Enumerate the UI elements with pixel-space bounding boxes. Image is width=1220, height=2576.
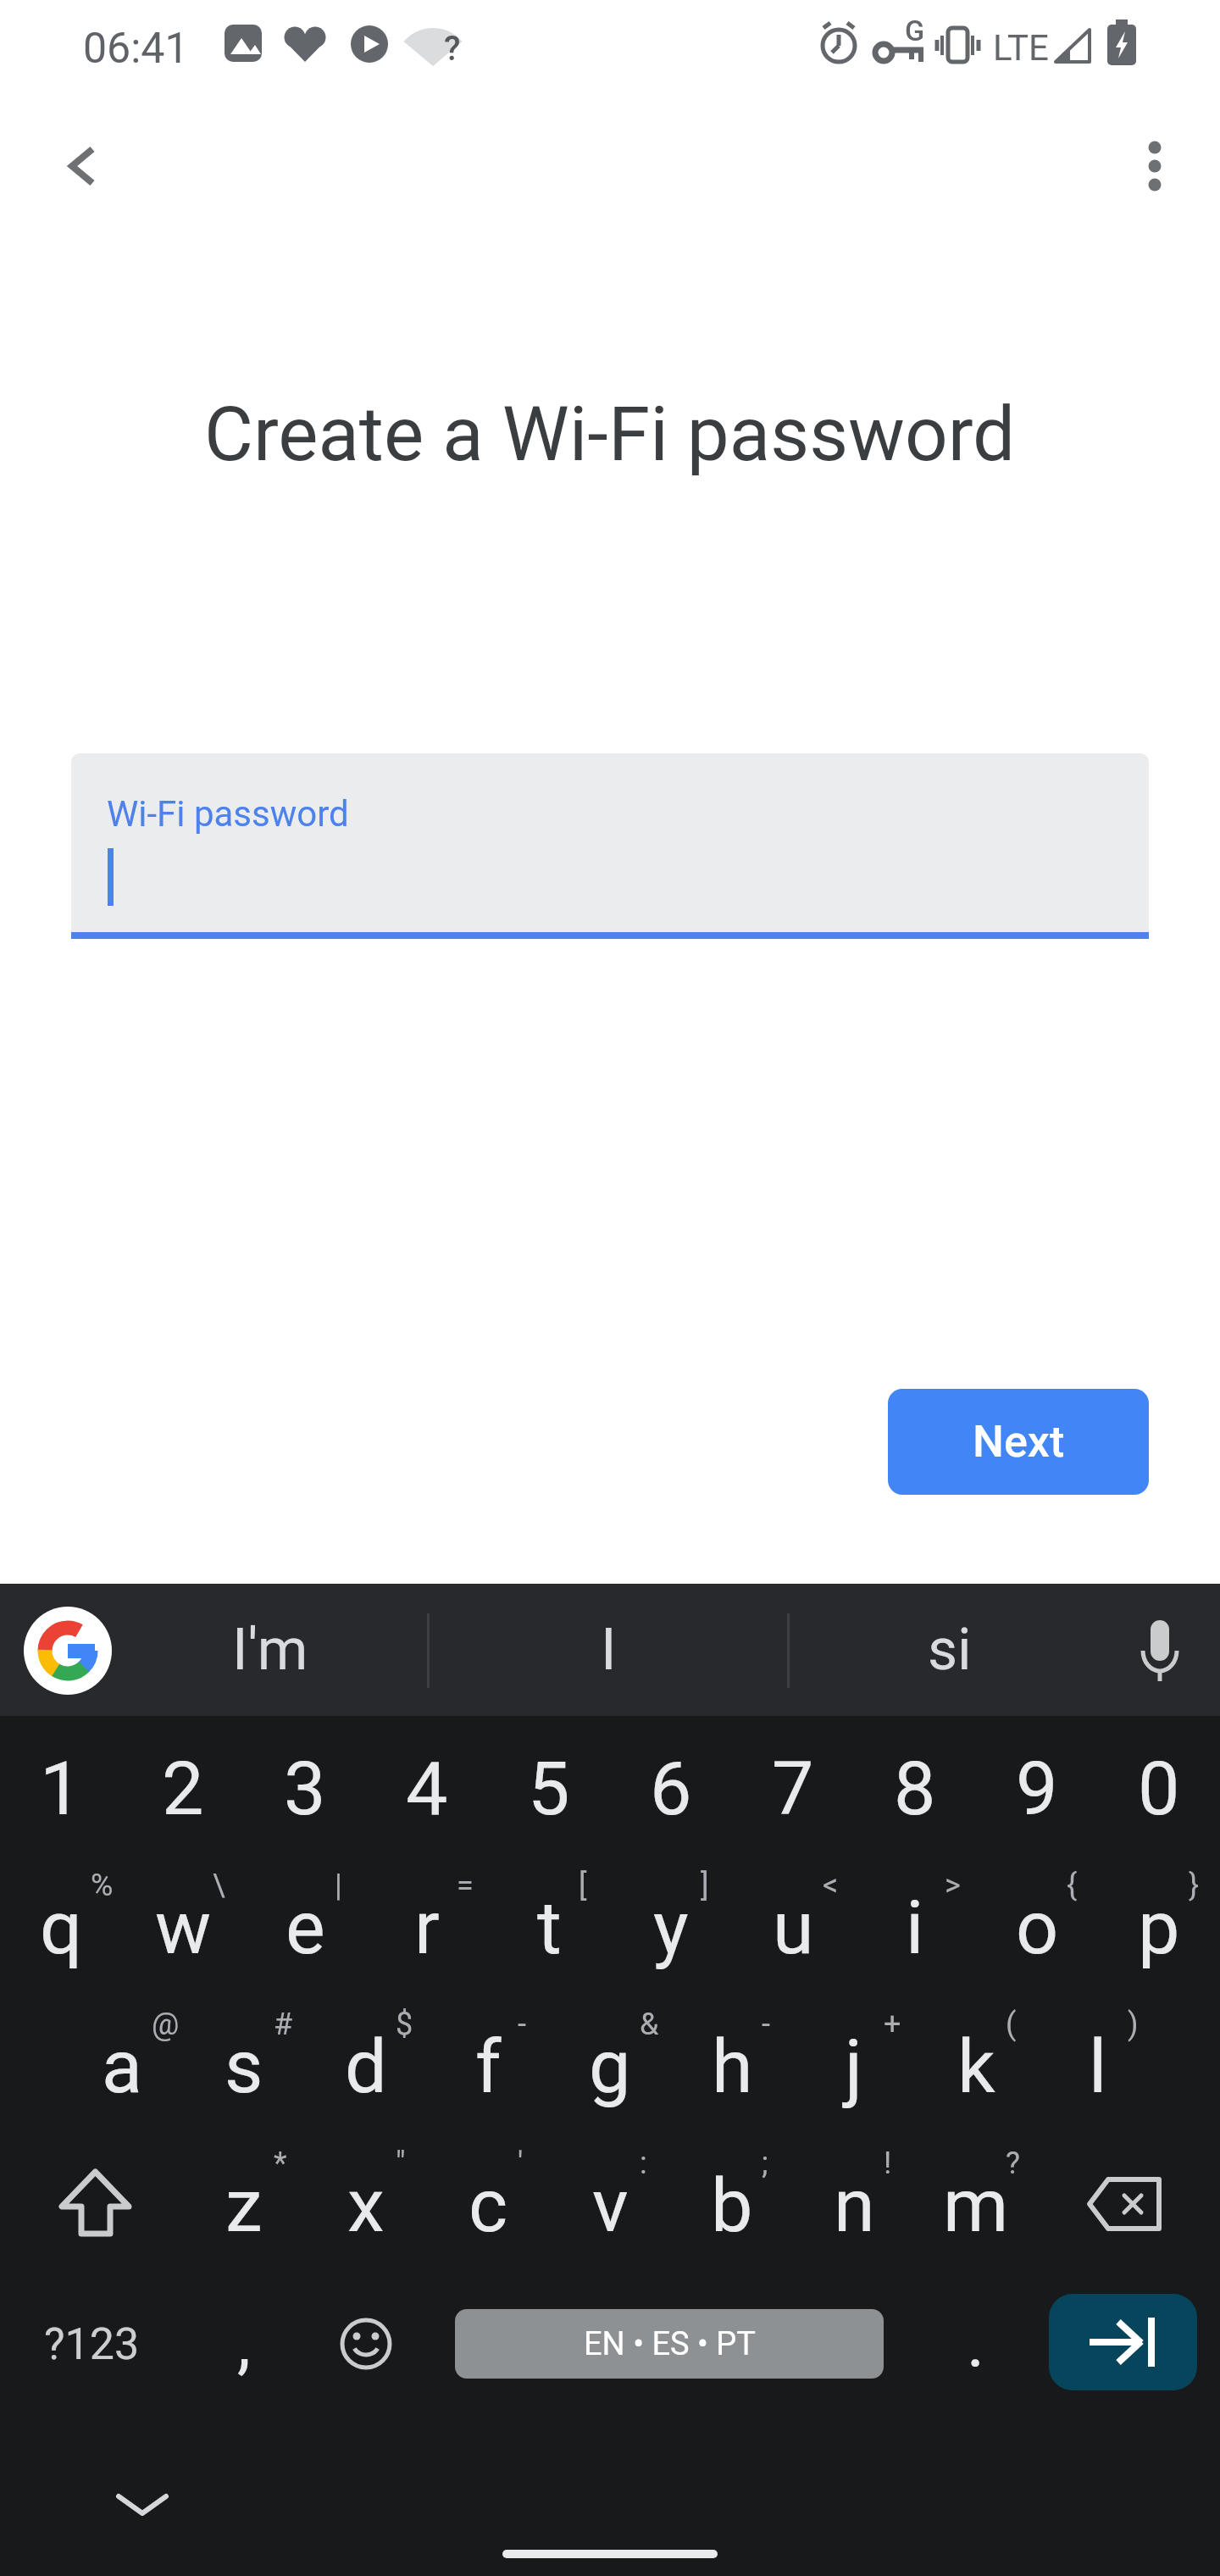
button[interactable]: c xyxy=(427,2135,549,2274)
button[interactable]: d xyxy=(305,1996,427,2135)
button[interactable]: m xyxy=(915,2135,1037,2274)
button[interactable]: si xyxy=(790,1584,1110,1716)
button[interactable]: o xyxy=(976,1857,1098,1996)
button[interactable]: I xyxy=(430,1584,787,1716)
staticText: - xyxy=(762,2007,770,2042)
staticText: z xyxy=(225,2162,263,2249)
staticText: 3 xyxy=(284,1745,326,1832)
button[interactable]: u xyxy=(732,1857,854,1996)
staticText: ? xyxy=(444,29,461,69)
staticText: u xyxy=(773,1884,814,1971)
button[interactable]: 8 xyxy=(854,1718,976,1857)
button[interactable]: ?123 xyxy=(0,2274,183,2413)
staticText: 0 xyxy=(1138,1745,1180,1832)
staticText: | xyxy=(335,1868,342,1903)
staticText: o xyxy=(1016,1884,1059,1971)
staticText: i xyxy=(906,1884,924,1971)
button[interactable]: l xyxy=(1037,1996,1159,2135)
staticText: & xyxy=(640,2007,659,2042)
button[interactable]: Next xyxy=(888,1389,1149,1495)
button[interactable] xyxy=(0,2135,183,2274)
button[interactable]: j xyxy=(793,1996,915,2135)
button[interactable]: r xyxy=(366,1857,488,1996)
staticText: { xyxy=(1067,1868,1078,1903)
button[interactable]: 4 xyxy=(366,1718,488,1857)
button[interactable]: 2 xyxy=(122,1718,244,1857)
button[interactable]: 9 xyxy=(976,1718,1098,1857)
button[interactable] xyxy=(71,753,1149,932)
button[interactable]: b xyxy=(671,2135,793,2274)
staticText: G xyxy=(905,14,925,47)
staticText: l xyxy=(1089,2023,1107,2110)
button[interactable]: v xyxy=(549,2135,671,2274)
button[interactable]: y xyxy=(610,1857,732,1996)
button[interactable]: 5 xyxy=(488,1718,610,1857)
staticText: si xyxy=(928,1616,972,1684)
button[interactable]: z xyxy=(183,2135,305,2274)
staticText: Create a Wi-Fi password xyxy=(204,390,1016,478)
staticText: b xyxy=(711,2162,753,2249)
button[interactable]: k xyxy=(915,1996,1037,2135)
staticText: p xyxy=(1138,1884,1180,1971)
staticText: s xyxy=(225,2023,263,2110)
staticText: d xyxy=(345,2023,387,2110)
button[interactable]: h xyxy=(671,1996,793,2135)
button[interactable] xyxy=(1037,2274,1220,2413)
staticText: w xyxy=(155,1884,212,1971)
staticText: v xyxy=(592,2162,629,2249)
staticText: EN • ES • PT xyxy=(584,2325,756,2363)
staticText: , xyxy=(237,2304,251,2384)
button[interactable] xyxy=(15,1602,117,1703)
button[interactable]: 1 xyxy=(0,1718,122,1857)
button[interactable]: n xyxy=(793,2135,915,2274)
staticText: 4 xyxy=(406,1745,448,1832)
staticText: ) xyxy=(1128,2007,1139,2042)
button[interactable]: 0 xyxy=(1098,1718,1220,1857)
staticText: y xyxy=(653,1884,689,1971)
button[interactable] xyxy=(1108,120,1201,214)
button[interactable] xyxy=(305,2274,427,2413)
button[interactable]: e xyxy=(244,1857,366,1996)
staticText: . xyxy=(967,2304,985,2384)
button[interactable]: a xyxy=(61,1996,183,2135)
button[interactable] xyxy=(88,2471,197,2547)
staticText: * xyxy=(274,2146,287,2181)
button[interactable]: g xyxy=(549,1996,671,2135)
staticText: 9 xyxy=(1016,1745,1058,1832)
staticText: ; xyxy=(762,2146,768,2181)
button[interactable]: p xyxy=(1098,1857,1220,1996)
staticText: 8 xyxy=(894,1745,936,1832)
staticText: $ xyxy=(396,2007,413,2042)
button[interactable]: . xyxy=(915,2274,1037,2413)
staticText: : xyxy=(640,2146,647,2181)
button[interactable]: 7 xyxy=(732,1718,854,1857)
button[interactable]: w xyxy=(122,1857,244,1996)
staticText: } xyxy=(1189,1868,1200,1903)
staticText: > xyxy=(945,1868,961,1903)
staticText: j xyxy=(845,2023,863,2110)
staticText: I'm xyxy=(232,1616,308,1684)
staticText: e xyxy=(286,1884,325,1971)
button[interactable]: I'm xyxy=(114,1584,427,1716)
button[interactable]: i xyxy=(854,1857,976,1996)
staticText: r xyxy=(414,1884,440,1971)
button[interactable]: 3 xyxy=(244,1718,366,1857)
staticText: I xyxy=(601,1616,617,1684)
button[interactable] xyxy=(36,120,129,214)
staticText: " xyxy=(396,2146,406,2181)
button[interactable]: , xyxy=(183,2274,305,2413)
button[interactable] xyxy=(1117,1608,1202,1693)
button[interactable]: t xyxy=(488,1857,610,1996)
button[interactable]: x xyxy=(305,2135,427,2274)
button[interactable]: s xyxy=(183,1996,305,2135)
staticText: m xyxy=(943,2162,1009,2249)
button[interactable]: EN • ES • PT xyxy=(455,2309,884,2379)
button[interactable] xyxy=(1037,2135,1220,2274)
staticText: ] xyxy=(701,1868,709,1903)
button[interactable]: 6 xyxy=(610,1718,732,1857)
staticText: ! xyxy=(884,2146,892,2181)
button[interactable]: q xyxy=(0,1857,122,1996)
staticText: x xyxy=(347,2162,385,2249)
staticText: = xyxy=(457,1868,474,1903)
button[interactable]: f xyxy=(427,1996,549,2135)
